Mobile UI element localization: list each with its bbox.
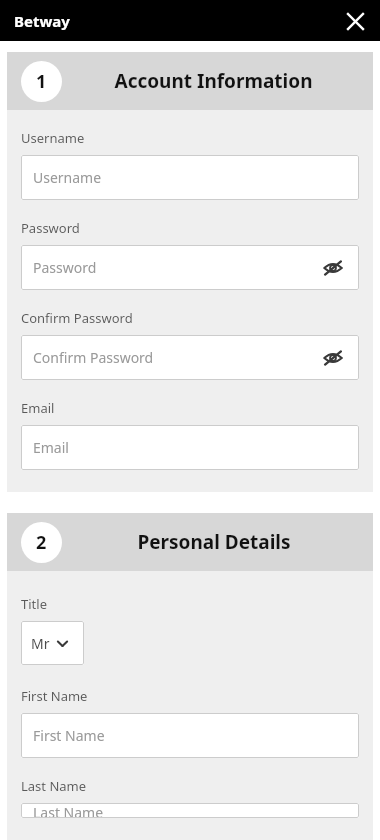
button[interactable]: Mr [21, 621, 84, 665]
staticText: First Name [21, 687, 88, 705]
button[interactable]: Show password [319, 344, 347, 372]
button[interactable]: Email [21, 425, 359, 470]
staticText: Last Name [21, 777, 87, 795]
staticText: 2 [36, 530, 47, 555]
button[interactable]: Username [21, 155, 359, 200]
button[interactable]: Close [338, 4, 372, 38]
staticText: Username [21, 129, 85, 147]
staticText: Title [21, 595, 47, 613]
button[interactable]: Show password [319, 254, 347, 282]
button[interactable]: Last Name [21, 803, 359, 818]
staticText: Mr [31, 634, 50, 653]
staticText: Confirm Password [33, 348, 154, 367]
button[interactable]: Confirm Password [21, 335, 359, 380]
staticText: Confirm Password [21, 309, 133, 327]
staticText: Password [21, 219, 80, 237]
staticText: Username [33, 168, 102, 187]
staticText: Email [33, 438, 69, 457]
staticText: Account Information [114, 68, 313, 94]
staticText: 1 [36, 69, 47, 94]
staticText: First Name [33, 726, 105, 745]
staticText: Last Name [33, 803, 104, 818]
button[interactable]: First Name [21, 713, 359, 758]
button[interactable]: Password [21, 245, 359, 290]
staticText: Betway [14, 11, 70, 31]
staticText: Personal Details [137, 529, 291, 555]
staticText: Email [21, 399, 55, 417]
staticText: Password [33, 258, 97, 277]
